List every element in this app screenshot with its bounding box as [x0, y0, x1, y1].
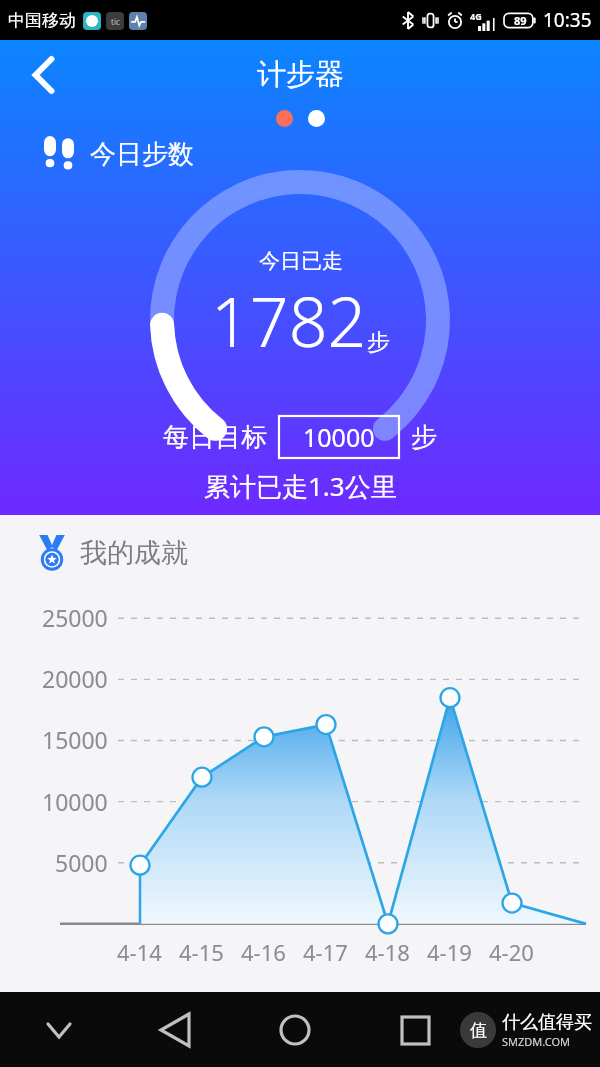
- staticText: 20000: [42, 663, 108, 694]
- staticText: 每日目标: [163, 421, 267, 454]
- staticText: 10:35: [543, 7, 592, 33]
- staticText: 什么值得买: [502, 1011, 592, 1034]
- staticText: 计步器: [257, 56, 344, 93]
- button[interactable]: Recents: [386, 1001, 444, 1059]
- staticText: 4-17: [303, 937, 348, 967]
- button[interactable]: 我的成就: [36, 535, 600, 571]
- staticText: 10000: [303, 420, 375, 454]
- staticText: 89: [514, 13, 527, 28]
- staticText: 中国移动: [8, 10, 76, 31]
- staticText: 步: [367, 328, 390, 357]
- staticText: 今日已走: [259, 248, 343, 274]
- staticText: 4-18: [365, 937, 410, 967]
- staticText: 10000: [42, 786, 108, 817]
- staticText: 我的成就: [80, 536, 188, 570]
- staticText: 4G: [470, 10, 482, 22]
- staticText: 4-19: [427, 937, 472, 967]
- staticText: 1782: [211, 274, 367, 367]
- button[interactable]: Home: [266, 1001, 324, 1059]
- staticText: 25000: [42, 602, 108, 633]
- button[interactable]: Back: [14, 46, 72, 104]
- staticText: 4-14: [117, 937, 162, 967]
- staticText: 值: [470, 1020, 487, 1041]
- staticText: 累计已走1.3公里: [204, 468, 397, 504]
- staticText: 4-15: [179, 937, 224, 967]
- button[interactable]: 10000: [279, 416, 399, 458]
- button[interactable]: Hide keyboard: [30, 1001, 88, 1059]
- staticText: 15000: [42, 724, 108, 755]
- staticText: tic: [111, 16, 120, 27]
- staticText: 4-16: [241, 937, 286, 967]
- staticText: 今日步数: [90, 138, 194, 171]
- staticText: SMZDM.COM: [502, 1034, 571, 1049]
- staticText: 4-20: [489, 937, 534, 967]
- button[interactable]: Back: [146, 1001, 204, 1059]
- staticText: 5000: [55, 847, 108, 878]
- staticText: 步: [411, 421, 437, 454]
